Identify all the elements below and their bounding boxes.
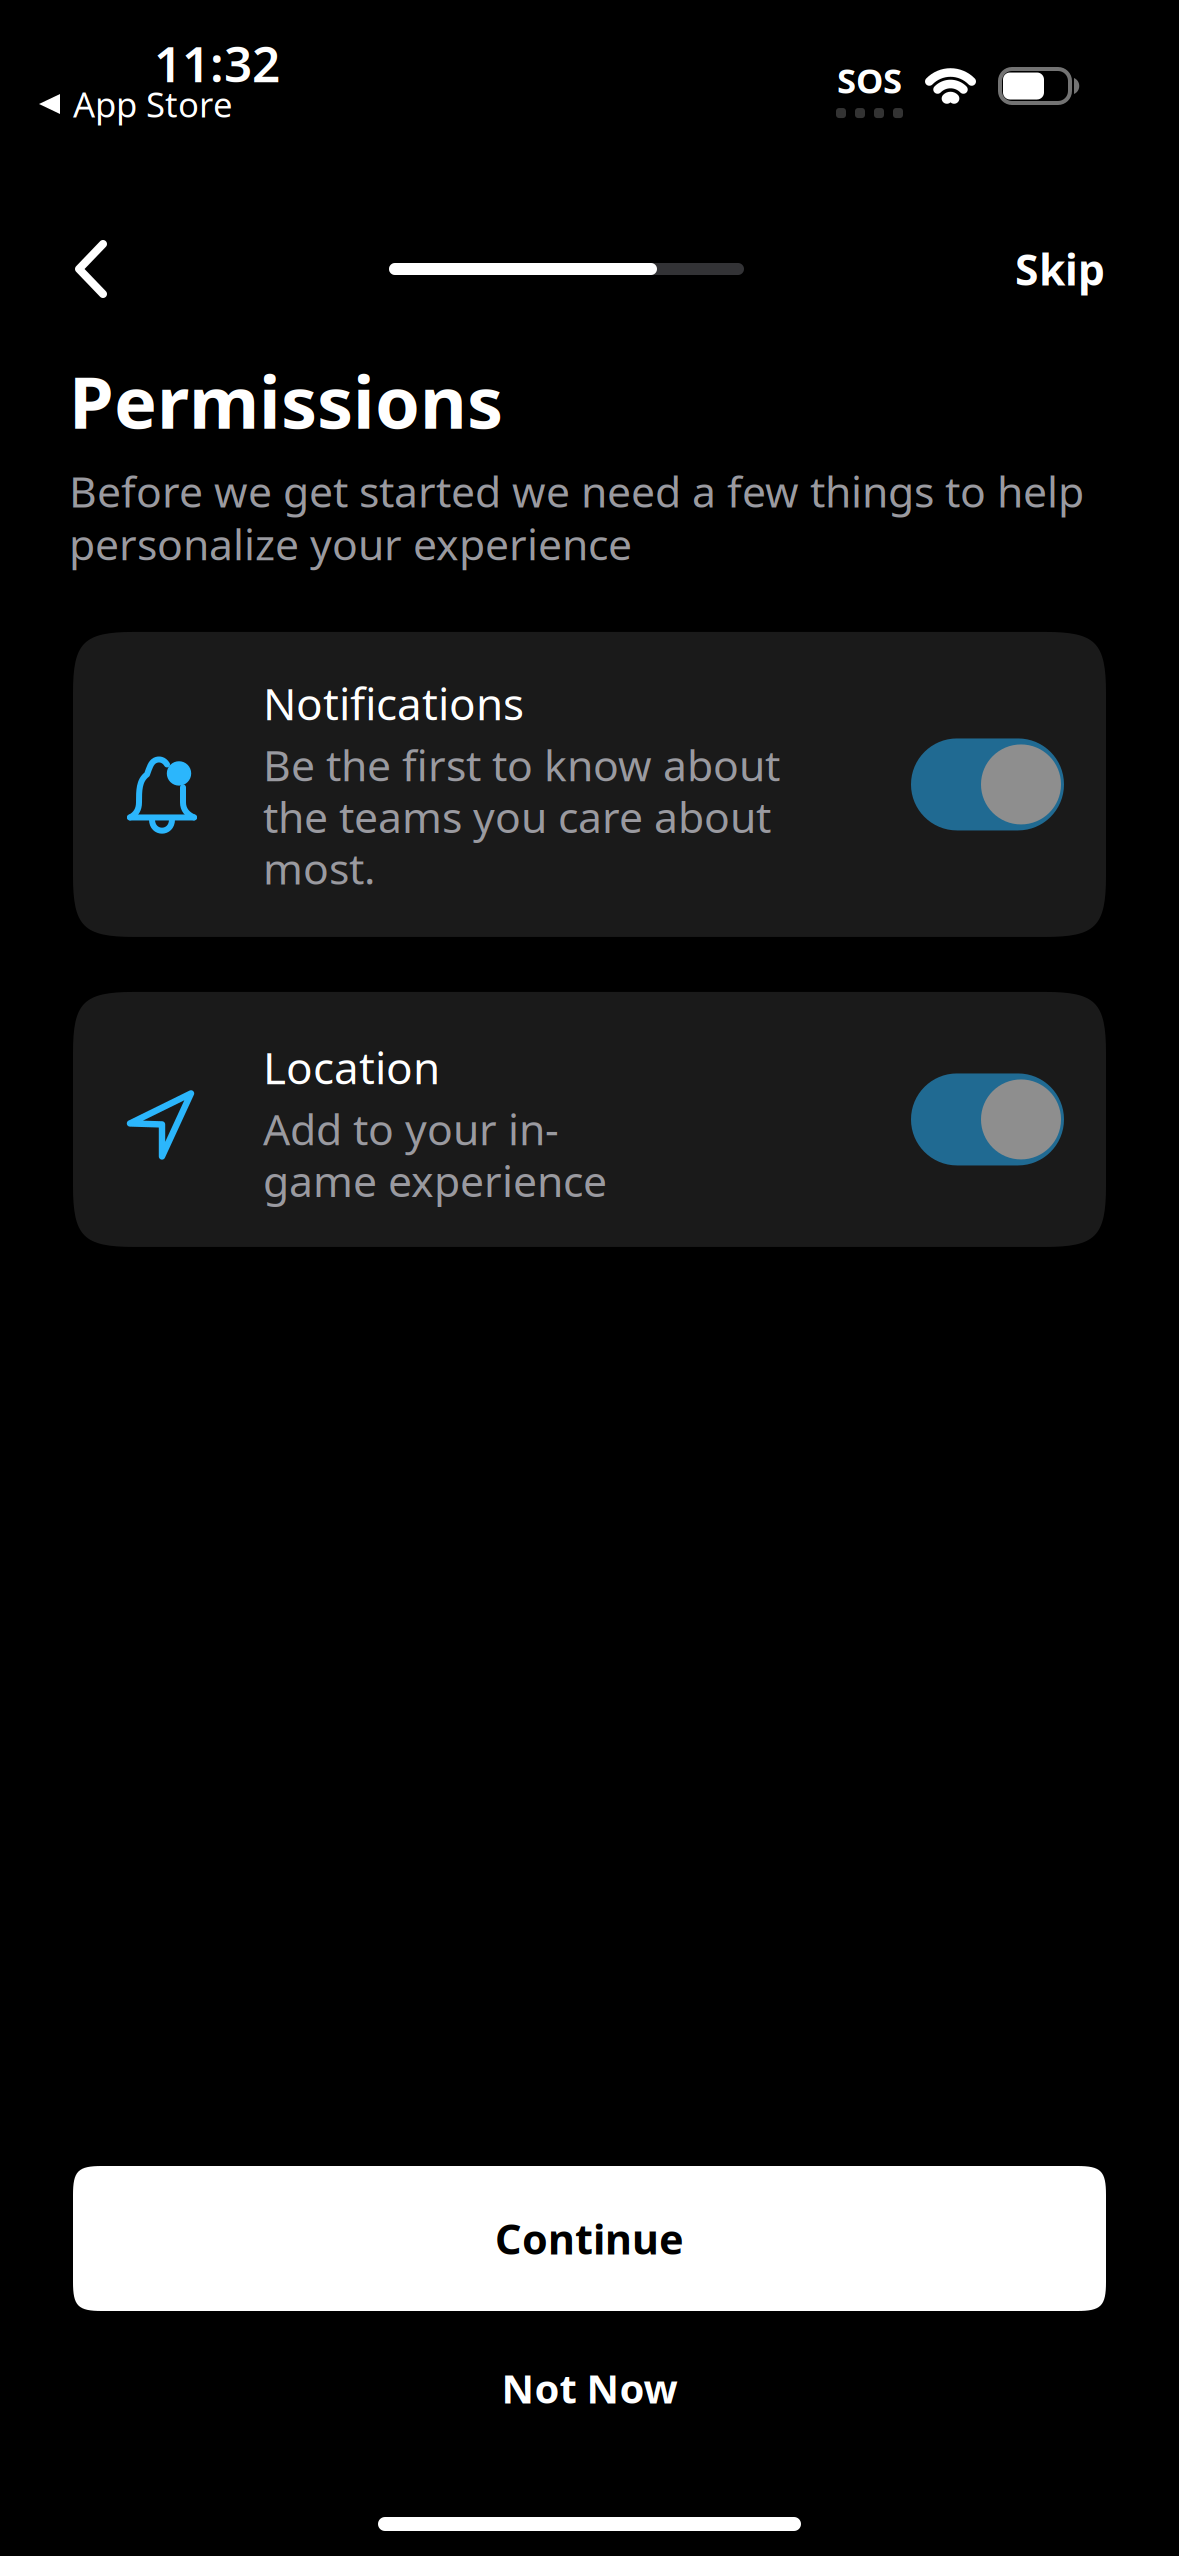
button[interactable]: Notifications <box>73 632 1106 937</box>
staticText: Be the first to know about the teams you… <box>263 736 780 896</box>
staticText: 11:32 <box>154 30 280 96</box>
staticText: Continue <box>495 2211 684 2266</box>
button[interactable]: Continue <box>73 2166 1106 2311</box>
staticText: SOS <box>837 57 902 103</box>
button[interactable]: Back <box>76 223 136 315</box>
button[interactable]: Skip <box>985 221 1105 317</box>
staticText: Before we get started we need a few thin… <box>69 463 1084 572</box>
staticText: Not Now <box>501 2361 677 2414</box>
staticText: Permissions <box>69 353 503 449</box>
staticText: App Store <box>73 81 233 127</box>
staticText: Location <box>263 1038 440 1096</box>
staticText: Skip <box>1015 241 1105 297</box>
staticText: Add to your in- game experience <box>263 1100 607 1209</box>
staticText: Notifications <box>263 674 524 732</box>
button[interactable]: Location <box>73 992 1106 1247</box>
button[interactable]: Not Now <box>0 2342 1179 2434</box>
